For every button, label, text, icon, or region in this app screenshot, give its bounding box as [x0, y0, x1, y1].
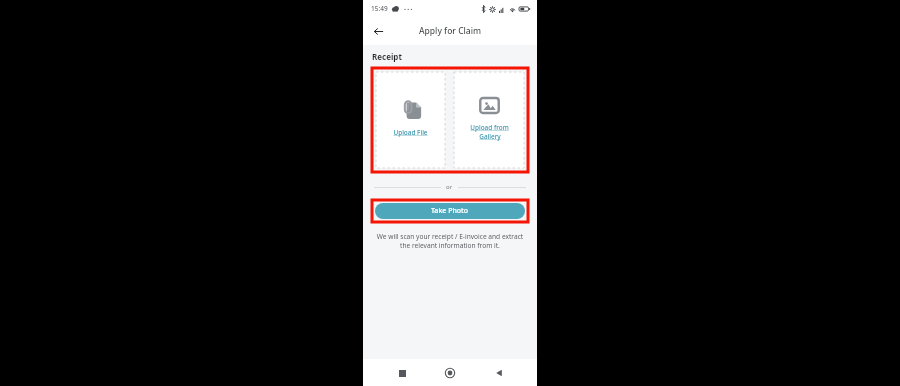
staticText: Apply for Claim [419, 25, 482, 37]
staticText: Upload from [470, 123, 509, 132]
button[interactable]: Recent apps [392, 363, 412, 383]
staticText: 15:49 [371, 4, 388, 13]
staticText: We will scan your receipt / E-invoice an… [376, 232, 524, 250]
staticText: Upload File [393, 128, 428, 137]
staticText: Receipt [372, 51, 402, 62]
other: Upload from gallery [479, 95, 500, 116]
button[interactable]: Take Photo [375, 203, 525, 219]
other: Upload file [400, 100, 422, 121]
button[interactable]: Upload file [376, 72, 445, 168]
staticText: Take Photo [431, 206, 469, 216]
button[interactable]: Upload from gallery [454, 72, 524, 168]
staticText: or [446, 183, 453, 191]
button[interactable]: Back [489, 363, 509, 383]
button[interactable]: Home [440, 363, 460, 383]
button[interactable]: Back [368, 21, 388, 41]
staticText: Gallery [479, 132, 501, 141]
